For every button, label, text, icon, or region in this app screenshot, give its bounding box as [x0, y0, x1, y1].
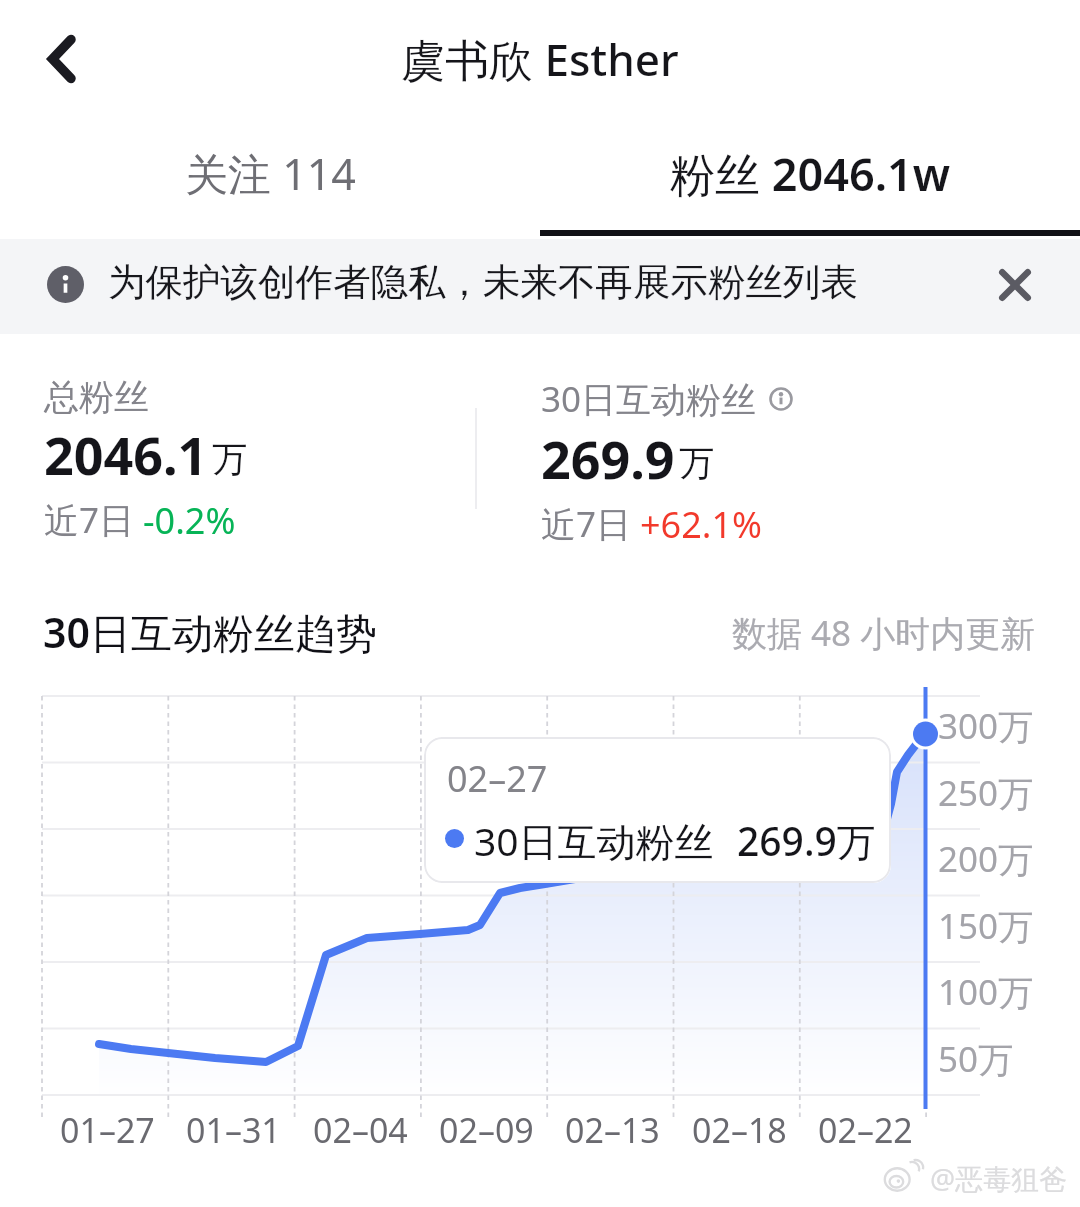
- staticText: 01–31: [186, 1107, 281, 1153]
- staticText: 为保护该创作者隐私，未来不再展示粉丝列表: [108, 259, 858, 306]
- button[interactable]: 关注 114: [0, 118, 540, 234]
- staticText: 万: [212, 437, 247, 481]
- staticText: 关注 114: [185, 144, 356, 203]
- staticText: 万: [679, 441, 714, 485]
- staticText: 粉丝 2046.1w: [670, 143, 951, 204]
- staticText: 02–09: [439, 1107, 534, 1153]
- staticText: 200万: [938, 835, 1034, 883]
- staticText: 250万: [938, 769, 1034, 817]
- staticText: 150万: [938, 902, 1034, 950]
- staticText: 02–13: [565, 1107, 660, 1153]
- staticText: 02–27: [447, 754, 548, 803]
- button[interactable]: Back: [22, 21, 100, 99]
- staticText: 2046.1: [44, 419, 208, 490]
- staticText: @恶毒狙爸: [930, 1159, 1068, 1197]
- staticText: 30日互动粉丝: [474, 814, 714, 867]
- staticText: 100万: [938, 968, 1034, 1016]
- staticText: 300万: [938, 702, 1034, 750]
- staticText: 50万: [938, 1035, 1014, 1083]
- staticText: 数据 48 小时内更新: [732, 609, 1036, 657]
- staticText: +62.1%: [640, 500, 762, 549]
- staticText: 近7日: [44, 496, 135, 544]
- staticText: 30日互动粉丝趋势: [43, 604, 377, 660]
- staticText: 269.9: [541, 423, 675, 494]
- staticText: 近7日: [541, 500, 632, 548]
- staticText: 02–22: [818, 1107, 913, 1153]
- staticText: 269.9万: [737, 814, 876, 867]
- button[interactable]: 为保护该创作者隐私，未来不再展示粉丝列表: [0, 239, 1080, 334]
- staticText: 总粉丝: [44, 375, 149, 419]
- button[interactable]: About 30-day active fans: [769, 387, 793, 411]
- staticText: -0.2%: [143, 496, 236, 545]
- button[interactable]: Close banner: [986, 256, 1044, 314]
- staticText: 01–27: [60, 1107, 155, 1153]
- button[interactable]: 粉丝 2046.1w: [540, 118, 1080, 234]
- staticText: 虞书欣 Esther: [401, 29, 679, 89]
- staticText: 02–18: [692, 1107, 787, 1153]
- button[interactable]: 02–27: [424, 737, 891, 883]
- staticText: 30日互动粉丝: [541, 375, 757, 423]
- staticText: 02–04: [313, 1107, 408, 1153]
